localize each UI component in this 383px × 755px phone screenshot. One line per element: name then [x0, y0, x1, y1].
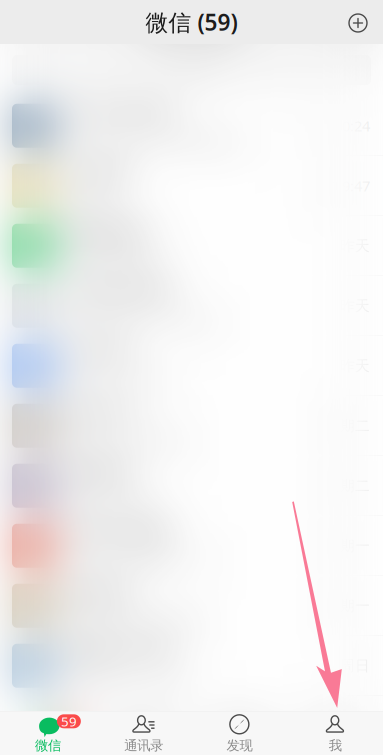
staticText: 小刚：人数统计一下 [67, 551, 220, 572]
staticText: 妈妈：记得吃饭 [67, 431, 186, 452]
button[interactable]: 通讯录 [96, 711, 192, 755]
button[interactable]: 59 [0, 711, 96, 755]
staticText: 好的，明天见 [67, 371, 169, 392]
staticText: 产品讨论组 [67, 99, 172, 126]
staticText: 陈经理 [67, 579, 130, 606]
button[interactable]: 我 [287, 711, 383, 755]
staticText: 发现 [226, 737, 252, 754]
staticText: 微信团队 [67, 219, 151, 246]
staticText: 健身打卡群 [67, 639, 172, 665]
staticText: 家人群 [67, 399, 130, 426]
button[interactable]: 发现 [191, 711, 287, 755]
staticText: [图片] [67, 190, 113, 213]
staticText: 王老师 [67, 159, 130, 185]
staticText: 合同已经发你邮箱 [67, 611, 203, 632]
staticText: 微信 (59) [145, 7, 237, 37]
staticText: 收到，谢谢！ [67, 491, 169, 512]
staticText: 59 [61, 712, 77, 730]
staticText: 张小明 [67, 339, 130, 366]
staticText: 李晓雯 [67, 459, 130, 486]
staticText: 李工：这个方案我看过了 [67, 131, 254, 152]
staticText: 周日 [340, 657, 370, 675]
button[interactable]: New chat [341, 6, 375, 40]
staticText: 同学会筹备 [67, 519, 172, 546]
staticText: 今天跑了 5 公里 [67, 670, 189, 693]
staticText: 账号安全提示 [67, 251, 169, 272]
staticText: 微信 [35, 737, 61, 754]
staticText: 通讯录 [124, 737, 163, 754]
staticText: 每日早报 · 今日头条 [67, 310, 218, 333]
staticText: 我 [329, 737, 342, 754]
